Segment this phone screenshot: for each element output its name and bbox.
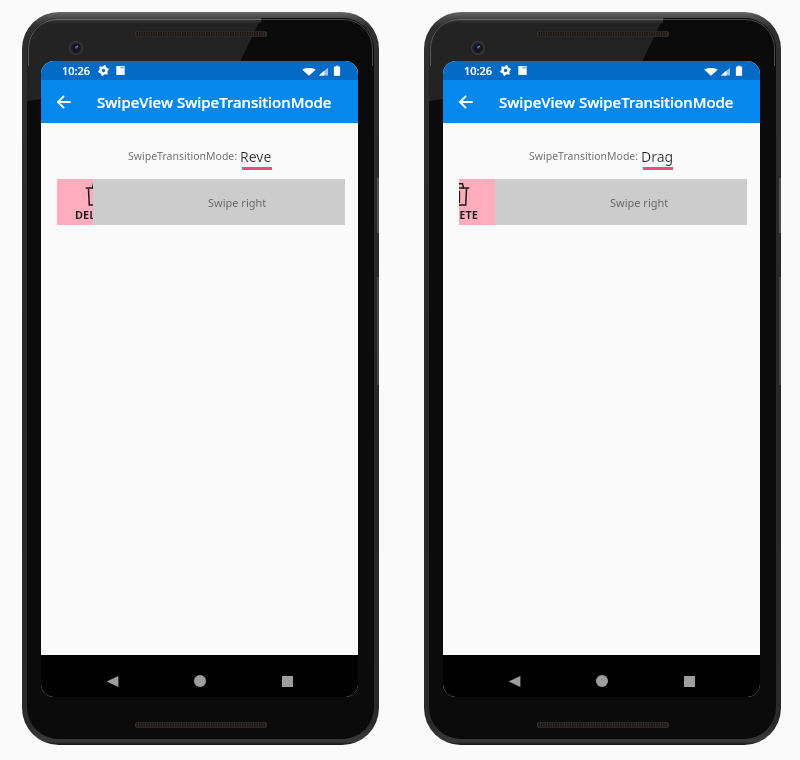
staticText: Drag: [641, 147, 674, 166]
button[interactable]: Recent apps: [265, 660, 309, 697]
button[interactable]: Home: [580, 660, 624, 697]
staticText: Swipe right: [208, 195, 267, 210]
button[interactable]: Home: [178, 660, 222, 697]
staticText: Swipe right: [610, 195, 669, 210]
staticText: Reve: [240, 147, 272, 166]
button[interactable]: Swipe right: [93, 179, 345, 225]
staticText: SwipeTransitionMode:: [529, 149, 641, 163]
button[interactable]: Back: [90, 660, 134, 697]
button[interactable]: Navigate up: [48, 86, 80, 118]
staticText: SwipeView SwipeTransitionMode: [499, 92, 734, 112]
staticText: 10:26: [62, 63, 91, 78]
button[interactable]: Back: [492, 660, 536, 697]
staticText: DELETE: [75, 207, 115, 222]
staticText: DELETE: [459, 207, 479, 222]
staticText: SwipeView SwipeTransitionMode: [97, 92, 332, 112]
button[interactable]: Swipe right: [495, 179, 747, 225]
staticText: 10:26: [464, 63, 493, 78]
button[interactable]: Recent apps: [667, 660, 711, 697]
button[interactable]: Navigate up: [450, 86, 482, 118]
staticText: SwipeTransitionMode:: [128, 149, 240, 163]
